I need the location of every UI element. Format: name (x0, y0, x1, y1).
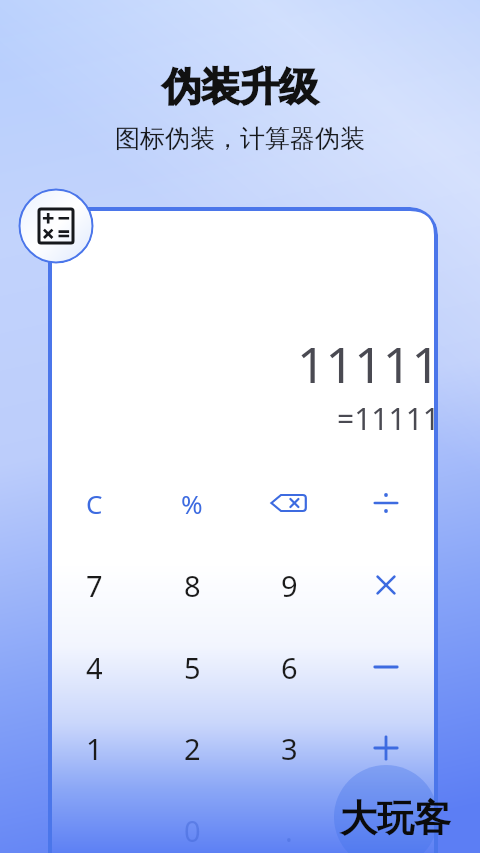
button[interactable]: 7 (48, 549, 140, 621)
button[interactable]: 6 (243, 631, 335, 703)
staticText: 2 (184, 729, 201, 768)
button[interactable]: 0 (146, 794, 238, 853)
staticText: 伪装升级 (0, 62, 480, 853)
button[interactable]: % (146, 467, 238, 539)
button[interactable]: Calculator disguise icon (18, 188, 94, 264)
button[interactable]: 8 (146, 549, 238, 621)
staticText: 3 (281, 729, 298, 768)
staticText: 1 (86, 729, 103, 768)
button[interactable]: 5 (146, 631, 238, 703)
button[interactable]: Plus (340, 712, 432, 784)
button[interactable]: C (48, 467, 140, 539)
staticText: 7 (86, 566, 103, 605)
button[interactable]: 2 (146, 712, 238, 784)
button[interactable]: 1 (48, 712, 140, 784)
button[interactable]: 3 (243, 712, 335, 784)
button[interactable]: Multiply (340, 549, 432, 621)
button[interactable]: Minus (340, 631, 432, 703)
staticText: 9 (281, 566, 298, 605)
staticText: 11111 (0, 330, 440, 853)
button[interactable]: 4 (48, 631, 140, 703)
staticText: 6 (281, 648, 298, 687)
staticText: 5 (184, 648, 201, 687)
button[interactable]: 9 (243, 549, 335, 621)
staticText: % (181, 486, 203, 521)
button[interactable]: Backspace (243, 467, 335, 539)
button[interactable]: Divide (340, 467, 432, 539)
staticText: =11111 (0, 398, 440, 853)
button[interactable]: . (243, 794, 335, 853)
staticText: C (86, 486, 103, 521)
staticText: 大玩客 (340, 795, 451, 842)
staticText: . (285, 811, 293, 850)
staticText: 8 (184, 566, 201, 605)
staticText: 4 (86, 648, 103, 687)
staticText: 图标伪装，计算器伪装 (0, 123, 480, 853)
staticText: 0 (184, 811, 201, 850)
